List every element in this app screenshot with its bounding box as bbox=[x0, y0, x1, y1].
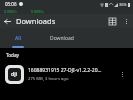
button[interactable]: More options bbox=[119, 14, 133, 28]
staticText: dji bbox=[11, 71, 18, 78]
button[interactable]: Back bbox=[0, 14, 14, 28]
button[interactable]: Download bbox=[36, 28, 88, 48]
staticText: 0.00B/s bbox=[31, 9, 44, 14]
staticText: Today bbox=[6, 52, 19, 58]
staticText: 36% bbox=[119, 2, 127, 7]
staticText: 275 MB, 3 hours ago bbox=[28, 76, 69, 82]
staticText: Downloads bbox=[16, 16, 56, 26]
staticText: 0.00B/s bbox=[4, 9, 17, 14]
staticText: 05:06 bbox=[5, 1, 17, 7]
staticText: All bbox=[15, 35, 21, 42]
button[interactable]: dji bbox=[0, 62, 133, 86]
staticText: Download bbox=[50, 35, 74, 42]
staticText: 16088931915 27-DJI-v1.2.2-20… bbox=[28, 67, 102, 74]
button[interactable]: All bbox=[0, 28, 36, 48]
button[interactable]: Item options bbox=[116, 68, 128, 80]
button[interactable]: Grid view bbox=[105, 14, 119, 28]
